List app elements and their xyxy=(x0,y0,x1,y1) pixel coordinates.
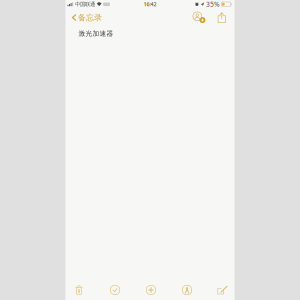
button[interactable]: Checklist xyxy=(103,280,126,300)
button[interactable]: Add People xyxy=(192,9,216,26)
staticText: 16:42 xyxy=(143,1,156,8)
staticText: 35% xyxy=(206,0,220,9)
staticText: 中国联通 xyxy=(75,1,95,8)
button[interactable]: Compose xyxy=(211,280,234,300)
button[interactable]: 备忘录 xyxy=(65,9,106,26)
staticText: 备忘录 xyxy=(78,13,102,22)
button[interactable]: Markup xyxy=(175,280,198,300)
button[interactable]: Delete xyxy=(67,280,90,300)
button[interactable]: Share xyxy=(216,9,234,26)
button[interactable]: Add xyxy=(139,280,162,300)
staticText: 激光加速器 xyxy=(78,29,113,38)
